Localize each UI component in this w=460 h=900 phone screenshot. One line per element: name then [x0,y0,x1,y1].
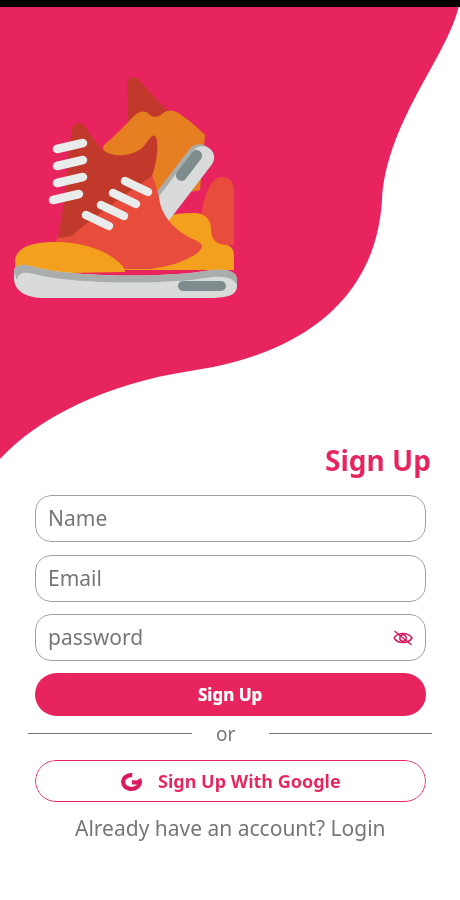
staticText: Sign Up With Google [158,769,341,794]
button[interactable]: Email [35,555,426,602]
staticText: Name [48,504,108,533]
staticText: Email [48,564,102,593]
button[interactable]: Name [35,495,426,542]
staticText: Sign Up [325,441,431,479]
staticText: or [216,721,236,747]
button[interactable]: Sign Up With Google [35,760,426,802]
button[interactable]: Sign Up [35,673,426,716]
button[interactable]: Already have an account? Login [75,814,386,843]
staticText: password [48,623,144,652]
button[interactable]: password [35,614,426,661]
button[interactable]: Show password [388,623,418,653]
staticText: Sign Up [198,683,263,706]
staticText: Already have an account? Login [75,814,386,843]
